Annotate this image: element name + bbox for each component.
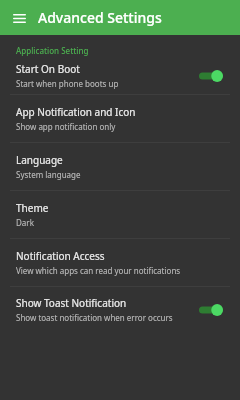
staticText: Language — [16, 153, 63, 167]
button[interactable]: Open navigation menu — [8, 7, 30, 29]
staticText: Advanced Settings — [38, 8, 162, 27]
staticText: Application Setting — [16, 45, 89, 56]
staticText: Show app notification only — [16, 121, 116, 132]
staticText: Dark — [16, 217, 34, 228]
staticText: Start On Boot — [16, 62, 80, 76]
staticText: App Notification and Icon — [16, 105, 136, 119]
staticText: Show toast notification when error occur… — [16, 312, 173, 323]
button[interactable]: Show Toast Notification — [0, 287, 240, 332]
button[interactable]: Language — [0, 143, 240, 190]
staticText: Show Toast Notification — [16, 296, 127, 310]
button[interactable]: App Notification and Icon — [0, 95, 240, 142]
staticText: Notification Access — [16, 249, 105, 263]
button[interactable]: Notification Access — [0, 239, 240, 286]
staticText: Start when phone boots up — [16, 78, 119, 89]
staticText: View which apps can read your notificati… — [16, 265, 181, 276]
button[interactable]: Theme — [0, 191, 240, 238]
staticText: System language — [16, 169, 81, 180]
staticText: Theme — [16, 201, 49, 215]
button[interactable]: Start On Boot toggle — [196, 67, 226, 85]
button[interactable]: Start On Boot — [0, 58, 240, 94]
button[interactable]: Show Toast Notification toggle — [196, 301, 226, 319]
